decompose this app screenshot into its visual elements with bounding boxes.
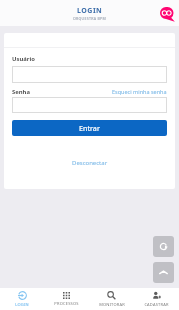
button[interactable]: Entrar (12, 120, 167, 136)
button[interactable] (12, 66, 167, 83)
staticText: ORQUESTRA BPM (73, 16, 106, 21)
staticText: LOGIN (15, 302, 29, 307)
button[interactable]: Desconectar (72, 159, 108, 167)
staticText: LOGIN (77, 6, 103, 16)
button[interactable]: CADASTRAR (134, 288, 179, 310)
staticText: Entrar (79, 123, 100, 133)
staticText: MONITORAR (99, 302, 125, 307)
button[interactable]: MONITORAR (89, 288, 134, 310)
button[interactable] (12, 97, 167, 113)
button[interactable]: Esqueci minha senha (112, 88, 167, 95)
button[interactable]: Refresh (153, 236, 174, 257)
staticText: CADASTRAR (144, 302, 169, 307)
button[interactable]: Scroll to top (153, 262, 174, 283)
staticText: Senha (12, 88, 30, 96)
button[interactable]: LOGIN (0, 288, 44, 310)
button[interactable]: Chat (160, 7, 175, 22)
staticText: PROCESSOS (54, 301, 79, 306)
staticText: Usuário (12, 55, 35, 63)
button[interactable]: PROCESSOS (44, 288, 89, 310)
